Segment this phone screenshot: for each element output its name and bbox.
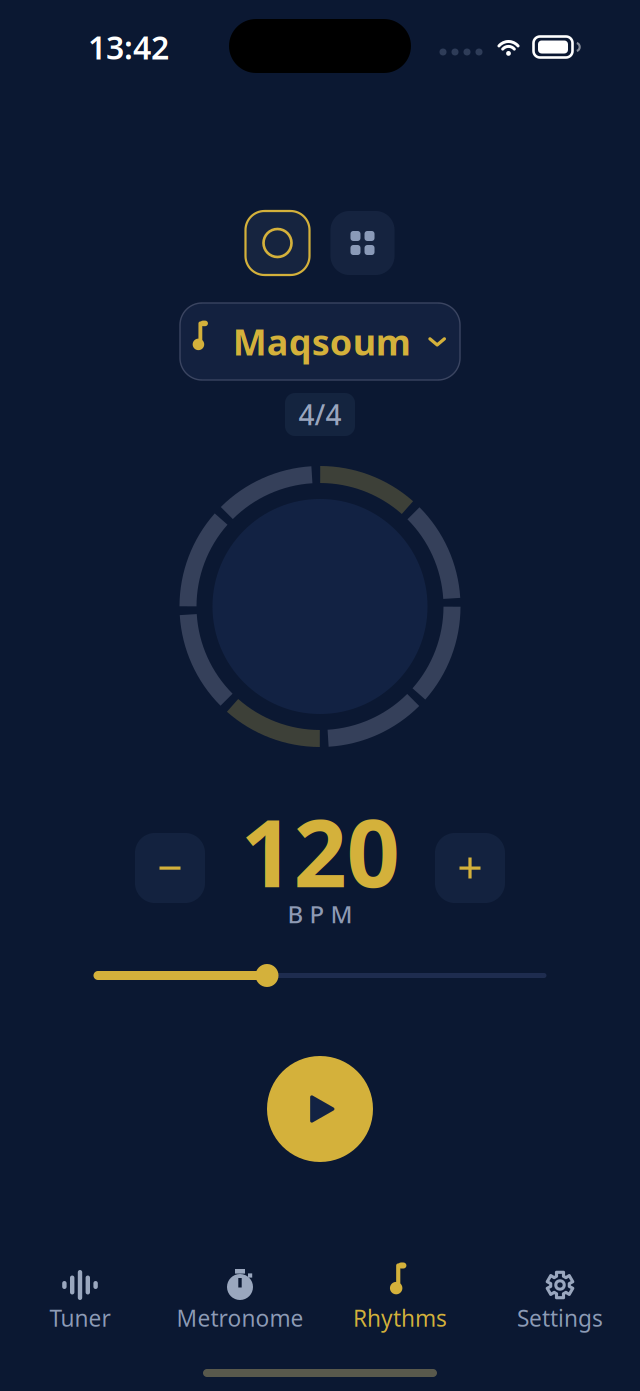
staticText: 120 — [240, 789, 399, 913]
button[interactable]: Rhythms — [320, 1262, 480, 1339]
staticText: Metronome — [176, 1303, 303, 1333]
staticText: Rhythms — [353, 1303, 447, 1333]
button[interactable]: Decrease tempo — [135, 833, 205, 903]
button[interactable]: Single beat view — [245, 211, 309, 275]
staticText: Settings — [517, 1303, 603, 1333]
button[interactable]: Metronome — [160, 1262, 320, 1339]
staticText: Maqsoum — [233, 318, 411, 365]
button[interactable]: Settings — [480, 1262, 640, 1339]
staticText: B P M — [287, 898, 352, 930]
button[interactable]: Maqsoum — [180, 303, 460, 380]
button[interactable]: Play — [267, 1056, 373, 1162]
button[interactable]: Tuner — [0, 1262, 160, 1339]
staticText: 4/4 — [298, 396, 341, 433]
staticText: 13:42 — [88, 26, 169, 68]
button[interactable]: Increase tempo — [435, 833, 505, 903]
button[interactable]: Grid view — [330, 211, 394, 275]
staticText: Tuner — [49, 1303, 110, 1333]
